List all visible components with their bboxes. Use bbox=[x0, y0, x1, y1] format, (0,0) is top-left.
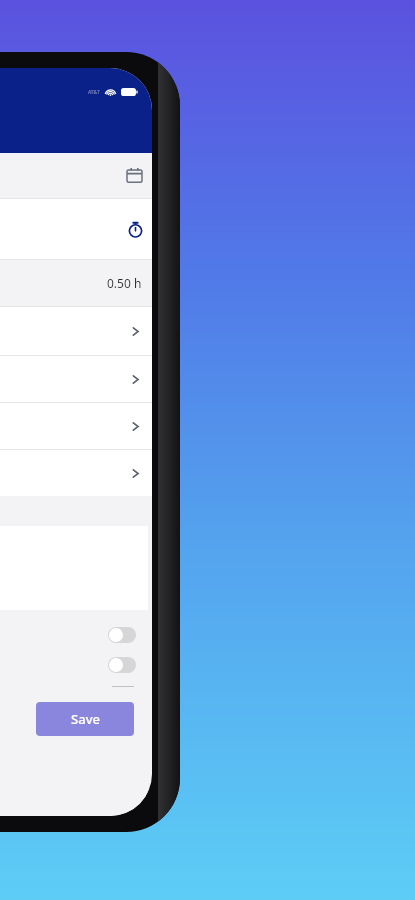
button[interactable]: Open bbox=[0, 403, 152, 449]
other: Open bbox=[130, 374, 141, 385]
button[interactable]: d time bbox=[0, 199, 152, 259]
button[interactable]: t bbox=[0, 307, 152, 355]
staticText: 0.50 h bbox=[107, 275, 142, 291]
staticText: Save bbox=[71, 710, 100, 728]
other: Toggle bbox=[108, 657, 136, 673]
other: Open bbox=[130, 421, 141, 432]
button[interactable]: Save bbox=[36, 702, 134, 736]
staticText: AT&T bbox=[88, 89, 100, 96]
button[interactable]: 0.50 h bbox=[0, 260, 152, 306]
button[interactable]: Toggle bbox=[0, 650, 152, 680]
other: Open bbox=[130, 468, 141, 479]
button[interactable]: Open bbox=[0, 450, 152, 496]
button[interactable]: Toggle bbox=[0, 620, 152, 650]
button[interactable] bbox=[0, 153, 152, 198]
button[interactable]: Open bbox=[0, 356, 152, 402]
other: Toggle bbox=[108, 627, 136, 643]
other: Open bbox=[130, 326, 141, 337]
